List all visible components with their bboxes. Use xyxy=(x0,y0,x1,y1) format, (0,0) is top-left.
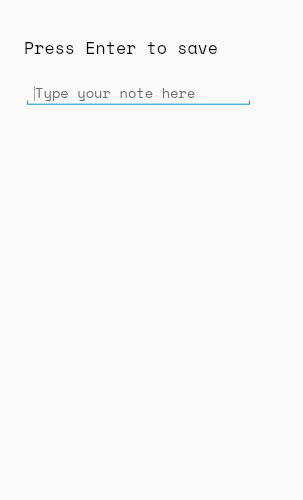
staticText: Press Enter to save xyxy=(24,35,219,60)
staticText: Type your note here xyxy=(35,83,196,103)
button[interactable]: Type your note here xyxy=(26,80,251,107)
